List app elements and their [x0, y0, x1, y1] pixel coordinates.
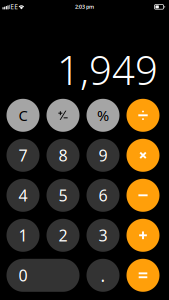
button[interactable]: 7	[6, 139, 39, 172]
button[interactable]: 9	[86, 139, 119, 172]
button[interactable]: Plus Minus	[46, 99, 79, 132]
button[interactable]: 3	[86, 219, 119, 252]
staticText: 6	[98, 185, 107, 206]
button[interactable]: Plus	[126, 219, 159, 252]
staticText: .	[100, 264, 105, 287]
button[interactable]: 1	[6, 219, 39, 252]
button[interactable]: 0	[6, 259, 79, 292]
staticText: 2:03 pm	[75, 3, 94, 10]
staticText: 9	[98, 145, 107, 166]
button[interactable]: 6	[86, 179, 119, 212]
staticText: 1	[18, 225, 27, 246]
button[interactable]: 5	[46, 179, 79, 212]
staticText: 4	[18, 185, 27, 206]
button[interactable]: 8	[46, 139, 79, 172]
button[interactable]: C	[6, 99, 39, 132]
staticText: 5	[58, 185, 67, 206]
button[interactable]: %	[86, 99, 119, 132]
staticText: 8	[58, 145, 67, 166]
staticText: %	[97, 106, 109, 125]
staticText: 0	[18, 265, 27, 286]
button[interactable]: 2	[46, 219, 79, 252]
button[interactable]: Minus	[126, 179, 159, 212]
staticText: 2	[58, 225, 67, 246]
button[interactable]: Equals	[126, 259, 159, 292]
staticText: 7	[18, 145, 27, 166]
button[interactable]: .	[86, 259, 119, 292]
button[interactable]: Multiply	[126, 139, 159, 172]
staticText: 1,949	[57, 43, 158, 96]
button[interactable]: 4	[6, 179, 39, 212]
staticText: C	[18, 106, 27, 125]
button[interactable]: Divide	[126, 99, 159, 132]
staticText: EE	[10, 2, 18, 11]
staticText: 3	[98, 225, 107, 246]
